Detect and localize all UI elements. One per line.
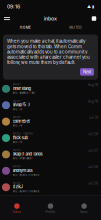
staticText: When you make a chat, it automatically g… xyxy=(7,38,90,65)
button[interactable]: Apps xyxy=(67,195,101,220)
staticText: Jul 26 xyxy=(88,165,98,169)
button[interactable]: Inbox xyxy=(0,195,34,220)
staticText: GENESIS xyxy=(12,116,20,118)
staticText: Profile xyxy=(45,210,55,213)
staticText: Jul 26 xyxy=(88,182,98,185)
staticText: innerstang xyxy=(12,86,31,91)
staticText: GENESIS xyxy=(12,165,20,168)
staticText: Next xyxy=(83,69,91,74)
button[interactable]: Next xyxy=(80,68,94,76)
staticText: GENESIS xyxy=(12,100,20,102)
staticText: you: Hi xyxy=(12,108,22,111)
button[interactable]: GENESIS • FARCASTER xyxy=(0,130,101,146)
staticText: okapi1 and lanos xyxy=(12,152,42,157)
staticText: you: Hi xyxy=(12,140,22,144)
button[interactable]: GENESIS xyxy=(0,113,101,130)
staticText: GENESIS xyxy=(12,149,20,151)
staticText: HOME xyxy=(20,25,31,30)
button[interactable]: GENESIS xyxy=(0,179,101,195)
button[interactable]: GENESIS xyxy=(0,163,101,179)
staticText: anonymuss xyxy=(12,168,32,173)
staticText: coinrebet xyxy=(12,119,29,124)
staticText: you: #farcaster xyxy=(12,157,32,160)
staticText: thick sub xyxy=(12,135,28,140)
button[interactable]: New message xyxy=(88,14,100,22)
button[interactable]: HOME xyxy=(0,22,50,32)
staticText: GENESIS xyxy=(12,83,20,86)
staticText: Aug 10 xyxy=(88,83,98,87)
staticText: ▲ ▮ xyxy=(87,4,94,9)
staticText: you: amazed i am xyxy=(12,91,34,94)
staticText: Jul 31 xyxy=(89,116,98,119)
button[interactable]: MUTED xyxy=(50,22,101,32)
staticText: alvap!5 :) xyxy=(12,102,30,107)
staticText: Jul 28 xyxy=(88,132,98,136)
button[interactable]: Profile xyxy=(34,195,67,220)
staticText: Apps xyxy=(80,210,88,213)
staticText: inbox xyxy=(44,15,57,22)
staticText: GENESIS xyxy=(12,182,20,184)
staticText: Jul 27 xyxy=(88,149,98,152)
staticText: dzikJ xyxy=(12,184,22,189)
button[interactable]: GENESIS xyxy=(0,146,101,163)
staticText: you: as you created xyxy=(12,190,39,193)
button[interactable]: Menu xyxy=(1,14,13,22)
staticText: Inbox xyxy=(12,210,21,213)
staticText: you: as you created xyxy=(12,173,39,176)
staticText: Aug 10 xyxy=(88,100,98,103)
staticText: GENESIS • FARCASTER xyxy=(12,132,32,135)
staticText: 09:16 xyxy=(7,3,20,10)
staticText: you: Hi xyxy=(12,124,22,127)
staticText: MUTED xyxy=(69,25,82,30)
button[interactable]: GENESIS xyxy=(0,81,101,97)
button[interactable]: GENESIS xyxy=(0,97,101,113)
